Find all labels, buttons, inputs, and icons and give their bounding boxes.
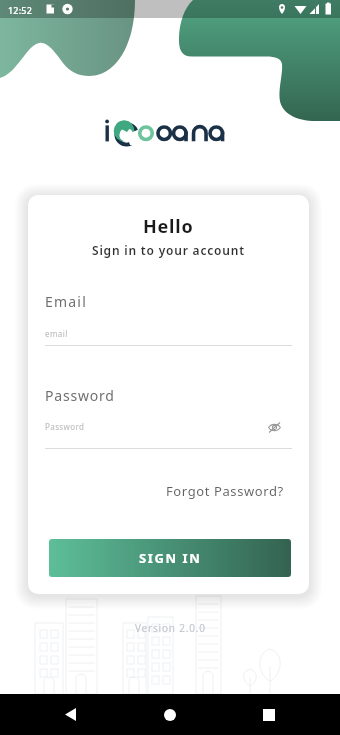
button[interactable]: Home xyxy=(149,694,190,735)
button[interactable]: Forgot Password? xyxy=(166,481,284,501)
staticText: Forgot Password? xyxy=(166,482,284,500)
staticText: SIGN IN xyxy=(139,549,202,567)
staticText: Version 2.0.0 xyxy=(135,621,206,635)
staticText: Email xyxy=(45,292,87,311)
button[interactable]: Back xyxy=(50,694,91,735)
staticText: 12:52 xyxy=(8,4,33,16)
staticText: email xyxy=(45,328,68,339)
staticText: Sign in to your account xyxy=(92,242,245,258)
staticText: Password xyxy=(45,421,85,432)
button[interactable]: Show password xyxy=(263,416,285,438)
button[interactable]: SIGN IN xyxy=(49,539,291,577)
staticText: Password xyxy=(45,386,115,405)
staticText: Hello xyxy=(143,214,194,239)
button[interactable]: Recent apps xyxy=(248,694,289,735)
